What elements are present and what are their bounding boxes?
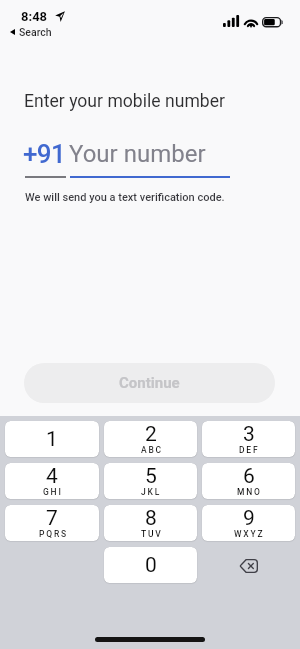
button[interactable]: 0 <box>104 547 197 583</box>
staticText: 0 <box>145 553 157 578</box>
button[interactable]: 6 <box>202 463 295 499</box>
staticText: 1 <box>46 427 58 452</box>
button[interactable]: 9 <box>202 505 295 541</box>
staticText: 6 <box>243 464 255 489</box>
staticText: +91 <box>23 139 65 169</box>
staticText: 8 <box>145 506 157 531</box>
button[interactable]: Continue <box>24 363 275 403</box>
button[interactable]: 3 <box>202 421 295 457</box>
staticText: DEF <box>239 445 260 455</box>
staticText: 9 <box>243 506 255 531</box>
staticText: 5 <box>145 464 157 489</box>
button[interactable]: 5 <box>104 463 197 499</box>
staticText: MNO <box>237 487 262 497</box>
staticText: We will send you a text verification cod… <box>25 191 225 204</box>
staticText: 8:48 <box>21 9 48 24</box>
staticText: 7 <box>46 506 58 531</box>
staticText: Continue <box>119 374 180 392</box>
staticText: 2 <box>145 422 157 447</box>
staticText: ABC <box>141 445 163 455</box>
staticText: Enter your mobile number <box>24 91 225 112</box>
staticText: Search <box>19 26 52 38</box>
staticText: PQRS <box>39 529 68 539</box>
staticText: 4 <box>46 464 58 489</box>
staticText: 3 <box>243 422 255 447</box>
button[interactable]: Delete <box>202 547 295 583</box>
button[interactable]: 7 <box>5 505 99 541</box>
button[interactable]: 1 <box>5 421 99 457</box>
button[interactable]: 2 <box>104 421 197 457</box>
staticText: Your number <box>69 140 206 168</box>
staticText: TUV <box>141 529 163 539</box>
staticText: JKL <box>141 487 162 497</box>
button[interactable]: 4 <box>5 463 99 499</box>
staticText: GHI <box>43 487 63 497</box>
button[interactable]: 8 <box>104 505 197 541</box>
staticText: WXYZ <box>234 529 265 539</box>
